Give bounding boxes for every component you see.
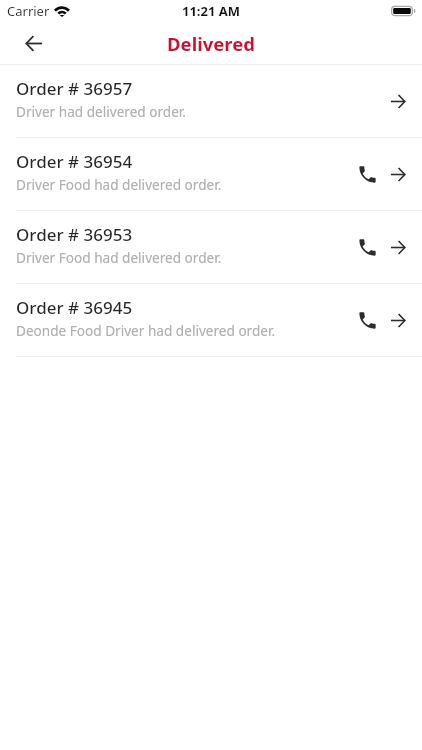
staticText: Driver Food had delivered order. [16, 175, 222, 194]
staticText: Deonde Food Driver had delivered order. [16, 321, 276, 340]
staticText: Order # 36954 [16, 150, 133, 173]
staticText: Carrier [7, 2, 50, 20]
button[interactable]: Call [352, 306, 382, 336]
staticText: Order # 36957 [16, 77, 133, 100]
button[interactable]: Order # 36945 [0, 284, 422, 357]
staticText: Driver had delivered order. [16, 102, 186, 121]
button[interactable]: Open order [386, 236, 410, 260]
button[interactable]: Call [352, 160, 382, 190]
button[interactable]: Order # 36954 [0, 138, 422, 211]
button[interactable]: Order # 36953 [0, 211, 422, 284]
button[interactable]: Open order [386, 163, 410, 187]
button[interactable]: Back [13, 23, 53, 63]
staticText: 11:21 AM [182, 2, 241, 20]
button[interactable]: Call [352, 233, 382, 263]
button[interactable]: Open order [386, 309, 410, 333]
staticText: Driver Food had delivered order. [16, 248, 222, 267]
staticText: Order # 36953 [16, 223, 133, 246]
staticText: Order # 36945 [16, 296, 133, 319]
button[interactable]: Order # 36957 [0, 65, 422, 138]
staticText: Delivered [167, 31, 255, 56]
button[interactable]: Open order [386, 90, 410, 114]
